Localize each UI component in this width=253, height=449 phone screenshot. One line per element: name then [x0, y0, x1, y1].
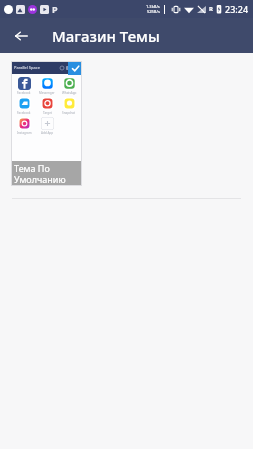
staticText: Instagram	[17, 131, 32, 135]
button[interactable]: Back	[8, 23, 34, 49]
staticText: 1.3kB/s	[146, 4, 160, 9]
button[interactable]: Target	[41, 97, 54, 110]
staticText: WhatsApp	[62, 91, 77, 95]
button[interactable]: Facebook	[18, 97, 31, 110]
staticText: 23:24	[225, 3, 249, 15]
button[interactable]: Facebook	[18, 77, 31, 90]
staticText: Тема По Умолчанию	[14, 162, 66, 185]
button[interactable]: Instagram	[18, 117, 31, 130]
staticText: R	[209, 5, 213, 13]
staticText: Messenger	[39, 91, 55, 95]
staticText: Add App	[41, 131, 53, 135]
button[interactable]: WhatsApp	[63, 77, 76, 90]
staticText: 525B/s	[147, 9, 160, 14]
staticText: P	[52, 3, 58, 15]
button[interactable]: Messenger	[41, 77, 54, 90]
button[interactable]: Add App	[41, 117, 54, 130]
button[interactable]: Snapchat	[63, 97, 76, 110]
staticText: Facebook	[17, 111, 31, 115]
staticText: Parallel Space	[14, 65, 40, 70]
staticText: Snapchat	[62, 111, 76, 115]
staticText: Магазин Темы	[52, 26, 160, 46]
staticText: Target	[43, 111, 52, 115]
staticText: Facebook	[17, 91, 31, 95]
button[interactable]: Parallel Space	[11, 61, 82, 186]
